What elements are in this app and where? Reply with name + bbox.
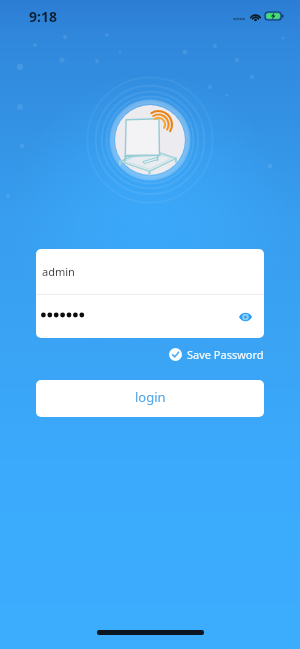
- staticText: 9:18: [29, 7, 57, 26]
- staticText: Save Password: [187, 347, 264, 362]
- button[interactable]: login: [36, 380, 264, 417]
- staticText: admin: [42, 264, 75, 279]
- staticText: login: [135, 388, 166, 406]
- button[interactable]: Show password: [233, 295, 264, 338]
- button[interactable]: Save Password: [169, 344, 264, 365]
- button[interactable]: admin: [36, 249, 264, 294]
